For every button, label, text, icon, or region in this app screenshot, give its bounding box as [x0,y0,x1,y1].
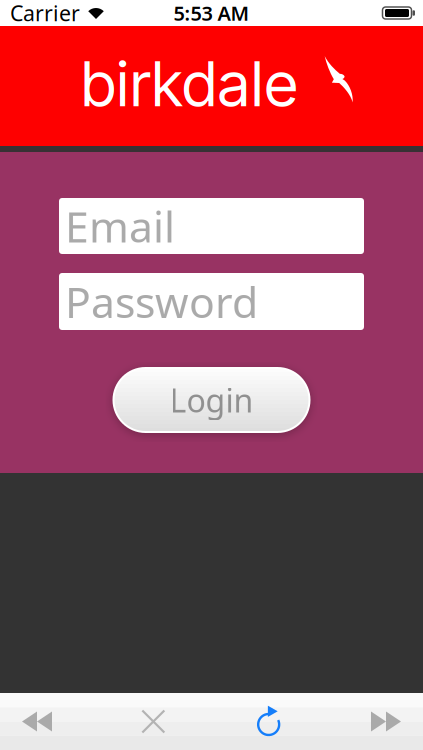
button[interactable]: Refresh [248,699,292,743]
button[interactable]: Login [113,368,309,432]
button[interactable]: Stop [131,699,175,743]
staticText: Carrier [10,0,80,27]
staticText: Password [65,273,258,330]
button[interactable]: Forward [364,699,408,743]
staticText: birkdale [81,47,298,121]
button[interactable]: Password [59,273,364,330]
button[interactable]: Back [15,699,59,743]
staticText: Login [169,379,253,421]
button[interactable]: Email [59,198,364,254]
staticText: Email [65,198,175,254]
staticText: 5:53 AM [173,0,249,26]
